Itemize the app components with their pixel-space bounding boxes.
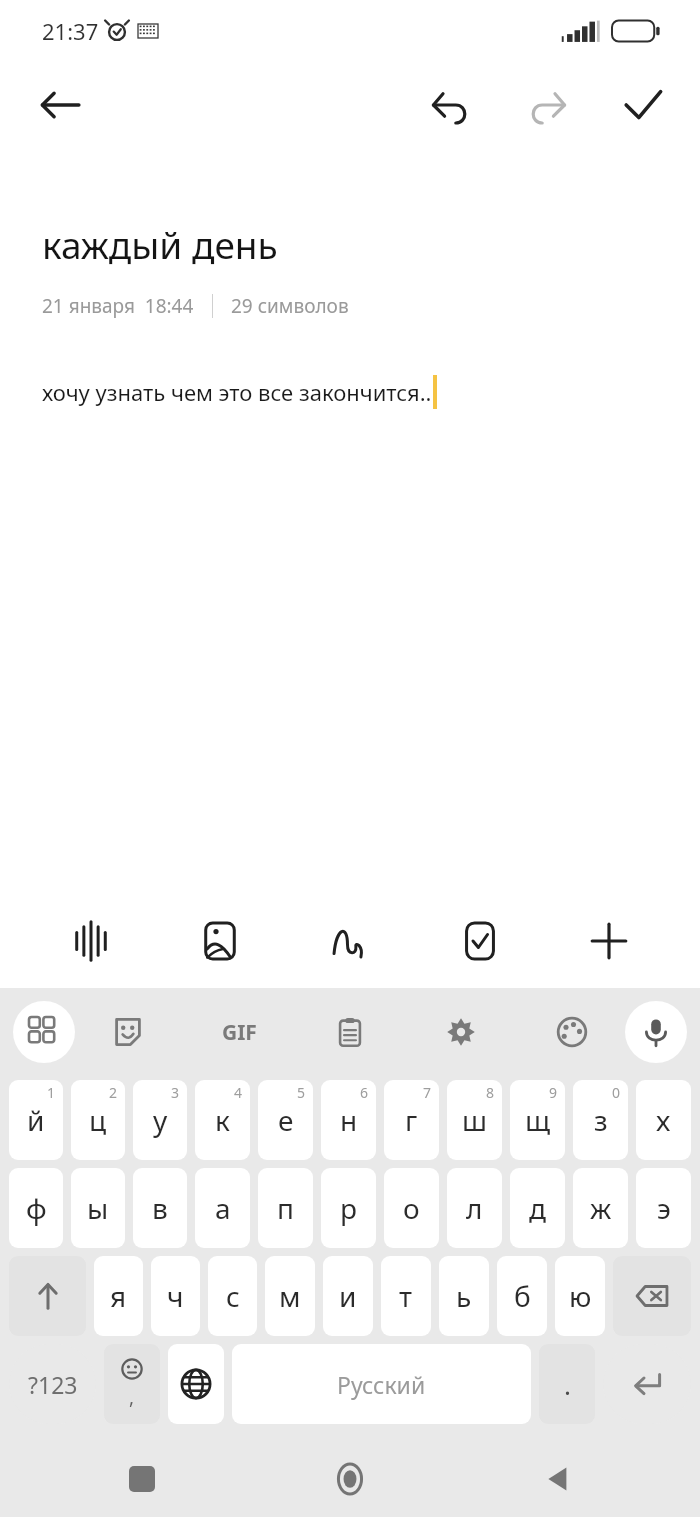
staticText: с [226,1277,240,1315]
button[interactable]: ю [555,1256,605,1336]
staticText: 5 [297,1083,306,1102]
button[interactable]: ц [71,1080,125,1160]
button[interactable]: GIF [211,1004,267,1060]
staticText: б [514,1277,531,1315]
button[interactable]: Voice input [625,1001,687,1063]
staticText: р [340,1189,358,1227]
button[interactable]: ч [151,1256,200,1336]
staticText: ж [590,1189,612,1227]
button[interactable]: а [195,1168,250,1248]
button[interactable]: п [258,1168,313,1248]
button[interactable]: Done [612,74,674,136]
button[interactable]: Add [570,902,648,980]
staticText: в [152,1189,168,1227]
staticText: 6 [360,1083,369,1102]
staticText: ф [26,1189,47,1227]
staticText: ч [167,1277,184,1315]
button[interactable]: Shift [9,1256,86,1336]
button[interactable]: р [321,1168,376,1248]
staticText: е [278,1101,294,1139]
staticText: ш [462,1101,488,1139]
button[interactable]: Undo [420,74,482,136]
button[interactable]: о [384,1168,439,1248]
button[interactable]: й [9,1080,63,1160]
button[interactable]: к [195,1080,250,1160]
staticText: у [153,1101,168,1139]
staticText: й [27,1101,45,1139]
button[interactable]: щ [510,1080,565,1160]
button[interactable]: Home [318,1447,382,1511]
button[interactable]: ы [71,1168,125,1248]
staticText: 2 [109,1083,118,1102]
staticText: ы [87,1189,109,1227]
staticText: а [215,1189,231,1227]
staticText: л [466,1189,483,1227]
button[interactable]: и [323,1256,373,1336]
button[interactable]: в [133,1168,187,1248]
button[interactable]: г [384,1080,439,1160]
staticText: з [594,1101,608,1139]
button[interactable]: Draw [311,902,389,980]
staticText: 29 символов [231,293,349,319]
staticText: 21 января 18:44 [42,293,194,319]
button[interactable]: Themes [544,1004,600,1060]
button[interactable]: д [510,1168,565,1248]
button[interactable]: Emoji and comma [104,1344,160,1424]
staticText: н [340,1101,358,1139]
staticText: ь [456,1277,472,1315]
button[interactable]: Stickers [100,1004,156,1060]
button[interactable]: т [381,1256,431,1336]
button[interactable]: Enter [603,1344,691,1424]
staticText: э [657,1189,671,1227]
button[interactable]: Русский [232,1344,531,1424]
button[interactable]: ш [447,1080,502,1160]
button[interactable]: ф [9,1168,63,1248]
staticText: 0 [612,1083,621,1102]
button[interactable]: х [636,1080,691,1160]
staticText: 1 [47,1083,56,1102]
button[interactable]: Back [526,1447,590,1511]
button[interactable]: з [573,1080,628,1160]
button[interactable]: е [258,1080,313,1160]
staticText: г [405,1101,418,1139]
button[interactable]: э [636,1168,691,1248]
button[interactable]: я [94,1256,143,1336]
button[interactable]: Keyboard menu [13,1001,75,1063]
button[interactable]: Redo [516,74,578,136]
button[interactable]: Change language [168,1344,224,1424]
staticText: 8 [486,1083,495,1102]
staticText: 7 [423,1083,432,1102]
button[interactable]: б [497,1256,547,1336]
button[interactable]: с [208,1256,257,1336]
button[interactable]: л [447,1168,502,1248]
staticText: Русский [337,1369,426,1400]
button[interactable]: ж [573,1168,628,1248]
staticText: щ [525,1101,551,1139]
button[interactable]: Insert image [181,902,259,980]
button[interactable]: Backspace [613,1256,691,1336]
button[interactable]: н [321,1080,376,1160]
button[interactable]: Recents [110,1447,174,1511]
staticText: 21:37 [42,16,99,46]
button[interactable]: Clipboard [322,1004,378,1060]
button[interactable]: . [539,1344,595,1424]
staticText: ц [89,1101,107,1139]
staticText: хочу узнать чем это все закончится.. [42,377,432,407]
staticText: каждый день [42,219,278,269]
button[interactable]: ь [439,1256,489,1336]
staticText: х [656,1101,671,1139]
staticText: 4 [234,1083,243,1102]
button[interactable]: ?123 [9,1344,96,1424]
button[interactable]: у [133,1080,187,1160]
button[interactable]: Checklist [441,902,519,980]
button[interactable]: Voice recording [52,902,130,980]
staticText: ?123 [28,1369,78,1400]
staticText: 9 [549,1083,558,1102]
staticText: 3 [171,1083,180,1102]
button[interactable]: м [265,1256,315,1336]
staticText: к [215,1101,230,1139]
staticText: я [110,1277,127,1315]
staticText: и [339,1277,357,1315]
button[interactable]: Settings [433,1004,489,1060]
button[interactable]: Back [30,75,90,135]
